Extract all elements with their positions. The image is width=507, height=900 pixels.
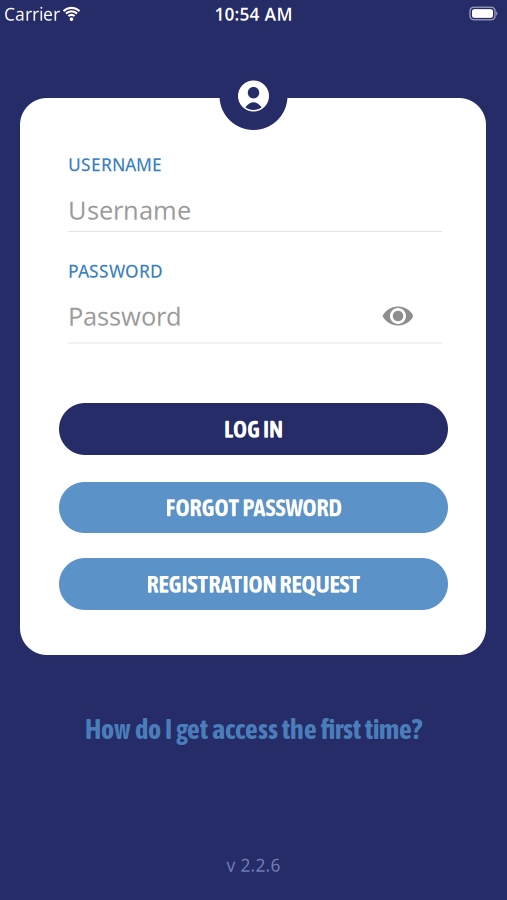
staticText: REGISTRATION REQUEST <box>146 570 360 598</box>
button[interactable]: How do I get access the first time? <box>85 713 422 745</box>
staticText: v 2.2.6 <box>226 853 280 876</box>
button[interactable]: REGISTRATION REQUEST <box>59 558 448 610</box>
button[interactable]: Username <box>68 193 442 227</box>
staticText: 10:54 AM <box>214 2 292 25</box>
staticText: How do I get access the first time? <box>85 713 422 745</box>
staticText: Username <box>68 193 191 227</box>
staticText: Carrier <box>4 2 60 25</box>
staticText: USERNAME <box>68 153 162 176</box>
staticText: LOG IN <box>224 415 283 443</box>
button[interactable]: FORGOT PASSWORD <box>59 482 448 533</box>
staticText: PASSWORD <box>68 259 163 282</box>
button[interactable]: LOG IN <box>59 403 448 455</box>
staticText: Password <box>68 299 182 333</box>
staticText: FORGOT PASSWORD <box>165 494 341 521</box>
button[interactable]: Password <box>68 299 402 333</box>
button[interactable]: Show password <box>382 306 413 325</box>
